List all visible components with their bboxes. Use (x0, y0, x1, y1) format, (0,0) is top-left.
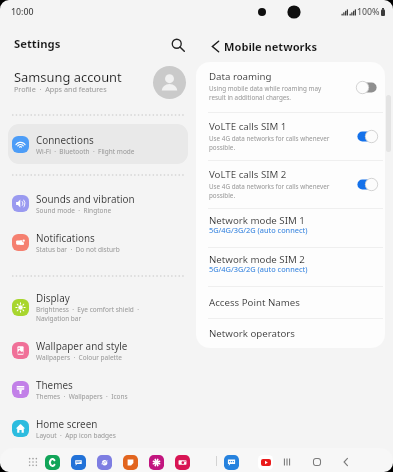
button[interactable]: Themes (8, 369, 188, 409)
staticText: 100% (357, 6, 380, 18)
staticText: Display (36, 291, 70, 304)
button[interactable]: VoLTE calls SIM 1 (196, 112, 385, 160)
staticText: Network mode SIM 1 (209, 214, 305, 227)
button[interactable] (71, 455, 86, 470)
button[interactable] (97, 455, 112, 470)
staticText: 5G/4G/3G/2G (auto connect) (209, 225, 308, 235)
button[interactable] (258, 455, 273, 470)
button[interactable]: All apps (25, 454, 41, 470)
staticText: VoLTE calls SIM 1 (209, 120, 287, 133)
button[interactable]: Recents (278, 453, 296, 471)
staticText: Notifications (36, 231, 95, 244)
staticText: Wallpapers · Colour palette (36, 353, 122, 362)
button[interactable] (175, 455, 190, 470)
staticText: Sound mode · Ringtone (36, 206, 112, 215)
staticText: Home screen (36, 417, 98, 430)
staticText: Profile · Apps and features (14, 84, 107, 94)
button[interactable] (123, 455, 138, 470)
button[interactable]: Network operators (196, 318, 385, 348)
button[interactable]: Back (203, 34, 227, 58)
staticText: Access Point Names (209, 296, 300, 309)
staticText: Settings (14, 36, 61, 51)
staticText: Status bar · Do not disturb (36, 245, 120, 254)
button[interactable]: VoLTE calls SIM 2 (196, 160, 385, 208)
button[interactable] (355, 175, 378, 193)
staticText: Use 4G data networks for calls whenever … (209, 134, 330, 152)
staticText: Connections (36, 133, 94, 146)
staticText: Network mode SIM 2 (209, 253, 305, 266)
button[interactable] (45, 455, 60, 470)
staticText: Data roaming (209, 70, 272, 83)
staticText: VoLTE calls SIM 2 (209, 168, 287, 181)
button[interactable] (149, 455, 164, 470)
button[interactable]: Wallpaper and style (8, 330, 188, 370)
button[interactable]: Access Point Names (196, 286, 385, 318)
button[interactable]: Samsung account (0, 60, 196, 104)
button[interactable] (355, 78, 378, 96)
button[interactable]: Data roaming (196, 62, 385, 112)
staticText: Wallpaper and style (36, 339, 128, 352)
button[interactable]: Display (8, 285, 188, 329)
staticText: Wi-Fi · Bluetooth · Flight mode (36, 147, 135, 156)
button[interactable]: Search (164, 31, 192, 59)
staticText: Layout · App icon badges (36, 431, 116, 440)
staticText: Sounds and vibration (36, 192, 135, 205)
button[interactable]: Home (308, 453, 326, 471)
button[interactable]: Network mode SIM 1 (196, 208, 385, 247)
button[interactable]: Back (337, 453, 355, 471)
button[interactable] (224, 455, 239, 470)
button[interactable]: Network mode SIM 2 (196, 247, 385, 287)
staticText: Brightness · Eye comfort shield · Naviga… (36, 305, 139, 323)
staticText: Themes (36, 378, 73, 391)
staticText: Network operators (209, 327, 296, 340)
button[interactable]: Home screen (8, 408, 188, 448)
staticText: Use 4G data networks for calls whenever … (209, 182, 330, 200)
staticText: Themes · Wallpapers · Icons (36, 392, 128, 401)
staticText: Mobile networks (224, 39, 318, 54)
button[interactable]: Sounds and vibration (8, 183, 188, 223)
button[interactable]: Notifications (8, 222, 188, 262)
staticText: Samsung account (14, 68, 122, 86)
button[interactable] (355, 127, 378, 145)
staticText: Using mobile data while roaming may resu… (209, 84, 322, 102)
staticText: 10:00 (11, 6, 34, 18)
staticText: 5G/4G/3G/2G (auto connect) (209, 264, 308, 274)
button[interactable]: Connections (8, 124, 188, 164)
